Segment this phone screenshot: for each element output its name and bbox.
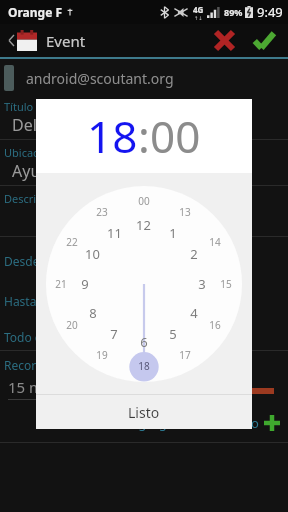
- staticText: 4G: [193, 4, 204, 15]
- button[interactable]: Listo: [36, 395, 252, 429]
- staticText: ↑↓: [194, 15, 203, 21]
- staticText: :: [138, 106, 150, 166]
- staticText: Ayu: [12, 160, 41, 182]
- button[interactable]: Notification: [130, 377, 242, 400]
- button[interactable]: 18: [87, 106, 138, 166]
- staticText: android@scoutant.org: [26, 69, 174, 88]
- staticText: 20: [66, 318, 78, 332]
- staticText: Todo el día: [4, 329, 66, 345]
- staticText: 3: [198, 275, 206, 293]
- staticText: 23: [96, 205, 108, 219]
- staticText: 4: [190, 304, 198, 322]
- button[interactable]: 00: [150, 106, 201, 166]
- staticText: 15 minutos: [8, 377, 88, 397]
- staticText: Agregar recordatorio: [130, 414, 259, 432]
- staticText: 19: [96, 348, 108, 362]
- staticText: 1: [169, 224, 177, 242]
- staticText: Event: [46, 31, 86, 51]
- staticText: Título: [4, 99, 34, 114]
- staticText: Listo: [128, 403, 160, 422]
- button[interactable]: 15 minutos: [8, 377, 118, 400]
- staticText: 13: [179, 205, 191, 219]
- button[interactable]: Cancel: [204, 24, 244, 57]
- staticText: Desde: [4, 253, 40, 269]
- staticText: Del: [12, 114, 37, 136]
- staticText: 22: [66, 235, 78, 249]
- staticText: 5: [169, 325, 177, 343]
- staticText: 00: [138, 194, 150, 208]
- staticText: 16: [209, 318, 221, 332]
- staticText: 2: [190, 245, 198, 263]
- staticText: 7: [110, 325, 118, 343]
- staticText: Orange F: [8, 4, 63, 20]
- button[interactable]: Agregar recordatorio: [0, 414, 280, 432]
- staticText: 18: [138, 359, 150, 373]
- staticText: Recordatorios: [4, 357, 83, 373]
- button[interactable]: Save: [244, 24, 284, 57]
- staticText: 10: [85, 245, 100, 263]
- staticText: 9:49: [257, 3, 283, 21]
- staticText: 11: [107, 224, 122, 242]
- staticText: 8: [89, 304, 97, 322]
- staticText: 89%: [224, 6, 243, 18]
- staticText: 14: [209, 235, 221, 249]
- staticText: 17: [179, 348, 191, 362]
- staticText: Notification: [130, 377, 213, 397]
- staticText: 9: [81, 275, 89, 293]
- staticText: 6: [140, 333, 148, 351]
- staticText: 12: [136, 216, 151, 234]
- staticText: Hasta: [4, 293, 37, 309]
- staticText: Ubicación: [4, 145, 55, 160]
- staticText: Descripción: [4, 191, 65, 206]
- staticText: 15: [220, 277, 232, 291]
- button[interactable]: Remove reminder: [248, 388, 274, 394]
- button[interactable]: Back: [0, 24, 46, 57]
- staticText: 21: [55, 277, 67, 291]
